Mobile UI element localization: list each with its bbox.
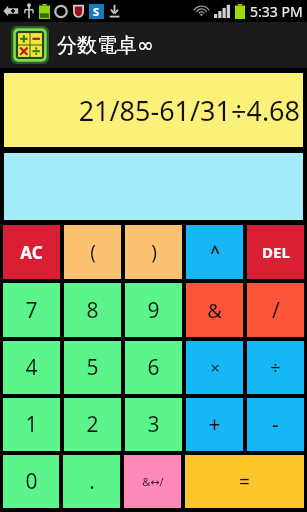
staticText: ( [90, 239, 96, 265]
button[interactable]: / [247, 283, 304, 337]
staticText: 1 [25, 410, 38, 439]
staticText: 2 [86, 410, 99, 439]
staticText: ÷ [270, 355, 281, 380]
staticText: AC [20, 241, 43, 264]
button[interactable]: × [186, 341, 243, 394]
staticText: . [89, 467, 95, 496]
button[interactable]: DEL [247, 225, 304, 279]
staticText: 5 [86, 353, 99, 382]
button[interactable]: + [186, 398, 243, 451]
button[interactable]: ^ [186, 225, 243, 279]
button[interactable]: 9 [125, 283, 182, 337]
staticText: 8 [86, 296, 99, 325]
staticText: × [210, 356, 220, 379]
staticText: = [239, 469, 250, 495]
staticText: DEL [262, 242, 290, 262]
button[interactable]: ÷ [247, 341, 304, 394]
button[interactable]: AC [3, 225, 60, 279]
staticText: 5:33 PM [250, 2, 303, 21]
button[interactable]: 8 [64, 283, 121, 337]
button[interactable]: 5 [64, 341, 121, 394]
button[interactable]: . [63, 455, 120, 508]
button[interactable]: = [185, 455, 304, 508]
staticText: 9 [147, 296, 160, 325]
button[interactable]: &↔/ [124, 455, 181, 508]
button[interactable]: 2 [64, 398, 121, 451]
staticText: - [272, 410, 279, 439]
staticText: + [208, 410, 221, 439]
button[interactable]: 4 [3, 341, 60, 394]
staticText: 4 [25, 353, 38, 382]
staticText: & [207, 297, 222, 324]
button[interactable]: 21/85-61/31÷4.68 [4, 73, 303, 147]
staticText: 6 [147, 353, 160, 382]
button[interactable]: 3 [125, 398, 182, 451]
staticText: ) [151, 239, 157, 265]
button[interactable]: 6 [125, 341, 182, 394]
button[interactable]: 1 [3, 398, 60, 451]
staticText: 3 [147, 410, 160, 439]
button[interactable]: & [186, 283, 243, 337]
staticText: 21/85-61/31÷4.68 [78, 92, 300, 129]
staticText: 7 [25, 296, 38, 325]
button[interactable]: 7 [3, 283, 60, 337]
staticText: 分数電卓∞ [57, 33, 154, 58]
button[interactable]: - [247, 398, 304, 451]
button[interactable]: 0 [3, 455, 59, 508]
staticText: &↔/ [142, 474, 164, 489]
staticText: / [272, 296, 280, 325]
button[interactable]: ) [125, 225, 182, 279]
staticText: S [93, 4, 100, 19]
staticText: ^ [210, 241, 220, 264]
button[interactable]: ( [64, 225, 121, 279]
staticText: 0 [25, 467, 38, 496]
